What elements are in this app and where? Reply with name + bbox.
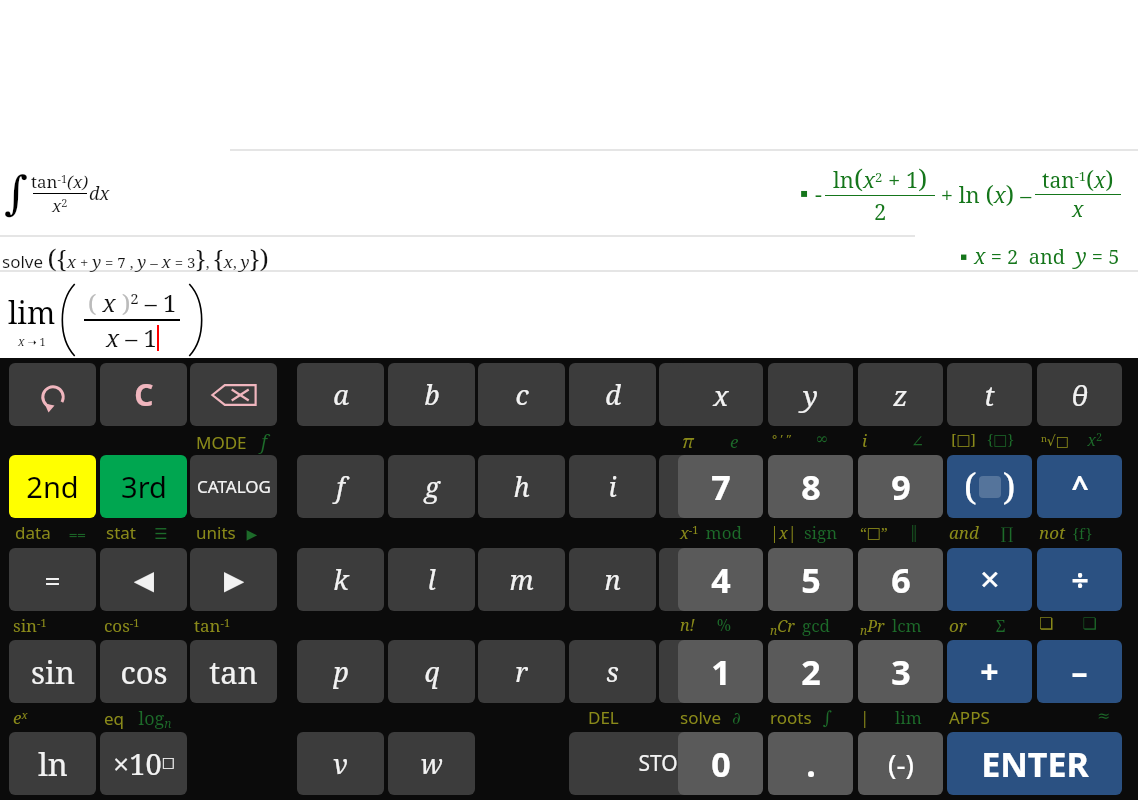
staticText: 8 xyxy=(801,464,821,510)
button[interactable]: 2nd xyxy=(9,455,96,518)
button[interactable]: 5 xyxy=(768,548,853,611)
button[interactable]: e xyxy=(659,363,746,426)
button[interactable]: Plus xyxy=(947,640,1032,703)
button[interactable]: Negative xyxy=(858,732,943,795)
staticText: k xyxy=(333,561,349,598)
button[interactable]: cos xyxy=(100,640,187,703)
staticText: p xyxy=(333,653,349,690)
button[interactable]: Multiply xyxy=(947,548,1032,611)
button[interactable]: ENTER xyxy=(947,732,1122,795)
button[interactable]: i xyxy=(569,455,656,518)
button[interactable]: z xyxy=(858,363,943,426)
button[interactable]: 2 xyxy=(768,640,853,703)
staticText: + xyxy=(980,650,999,694)
button[interactable]: b xyxy=(388,363,475,426)
staticText: l xyxy=(427,561,436,598)
button[interactable]: ln xyxy=(9,732,96,795)
staticText: eq logn xyxy=(104,706,172,732)
button[interactable]: f xyxy=(297,455,384,518)
staticText: b xyxy=(424,376,440,413)
button[interactable]: 3rd xyxy=(100,455,187,518)
staticText: 7 xyxy=(711,464,731,510)
button[interactable]: p xyxy=(297,640,384,703)
button[interactable]: x xyxy=(678,363,763,426)
button[interactable]: Parentheses xyxy=(947,455,1032,518)
staticText: ▶ xyxy=(224,565,244,595)
button[interactable]: θ xyxy=(1037,363,1122,426)
button[interactable]: Power xyxy=(1037,455,1122,518)
button[interactable]: r xyxy=(478,640,565,703)
staticText: x2 xyxy=(52,194,68,217)
button[interactable]: Left xyxy=(100,548,187,611)
button[interactable]: u xyxy=(659,640,746,703)
button[interactable]: 9 xyxy=(858,455,943,518)
button[interactable]: n xyxy=(569,548,656,611)
button[interactable]: 1 xyxy=(678,640,763,703)
button[interactable]: h xyxy=(478,455,565,518)
staticText: + ln (x) – xyxy=(935,177,1032,210)
button[interactable]: m xyxy=(478,548,565,611)
staticText: π e xyxy=(682,429,739,454)
button[interactable]: 0 xyxy=(678,732,763,795)
button[interactable]: g xyxy=(388,455,475,518)
button[interactable]: Delete xyxy=(190,363,277,426)
button[interactable]: tan xyxy=(190,640,277,703)
staticText: STO xyxy=(638,749,678,778)
button[interactable]: ×10□ xyxy=(100,732,187,795)
staticText: not {f} xyxy=(1039,521,1093,544)
staticText: f xyxy=(336,468,345,505)
staticText: solve ({x + y = 7 , y – x = 3}, {x, y}) xyxy=(2,240,269,275)
button[interactable]: k xyxy=(297,548,384,611)
staticText: | lim xyxy=(860,706,922,729)
button[interactable]: STO xyxy=(569,732,747,795)
button[interactable]: t xyxy=(947,363,1032,426)
staticText: [□] {□} xyxy=(951,429,1014,449)
button[interactable]: 6 xyxy=(858,548,943,611)
staticText: ✕ xyxy=(979,565,1001,595)
staticText: x = 2 and y = 5 xyxy=(974,242,1120,271)
staticText: z xyxy=(893,376,908,414)
button[interactable]: d xyxy=(569,363,656,426)
button[interactable]: Undo xyxy=(9,363,96,426)
button[interactable]: o xyxy=(659,548,746,611)
staticText: 3 xyxy=(891,649,911,695)
staticText: solve ∂ xyxy=(680,706,741,729)
staticText: ⁿ√□ x2 xyxy=(1041,429,1103,451)
staticText: ex xyxy=(13,706,28,729)
button[interactable]: = xyxy=(9,548,96,611)
button[interactable]: v xyxy=(297,732,384,795)
button[interactable]: 7 xyxy=(678,455,763,518)
button[interactable]: 8 xyxy=(768,455,853,518)
staticText: ln xyxy=(38,743,68,785)
button[interactable]: Right xyxy=(190,548,277,611)
button[interactable]: Minus xyxy=(1037,640,1122,703)
button[interactable]: 3 xyxy=(858,640,943,703)
staticText: sin xyxy=(31,651,75,693)
button[interactable]: l xyxy=(388,548,475,611)
button[interactable]: j xyxy=(659,455,746,518)
staticText: roots ∫ xyxy=(770,706,832,729)
staticText: 2 xyxy=(801,649,821,695)
staticText: MODE f xyxy=(196,429,268,455)
staticText: 1 xyxy=(711,649,731,695)
button[interactable]: c xyxy=(478,363,565,426)
button[interactable]: CATALOG xyxy=(190,455,277,518)
staticText: i ∠ xyxy=(862,429,925,452)
button[interactable]: sin xyxy=(9,640,96,703)
button[interactable]: a xyxy=(297,363,384,426)
button[interactable]: y xyxy=(768,363,853,426)
button[interactable]: C xyxy=(100,363,187,426)
button[interactable]: 4 xyxy=(678,548,763,611)
staticText: DEL xyxy=(588,706,619,729)
button[interactable]: . xyxy=(768,732,853,795)
staticText: tan-1(x) xyxy=(31,170,89,193)
staticText: t xyxy=(984,376,995,414)
button[interactable]: q xyxy=(388,640,475,703)
staticText: stat ☰ xyxy=(106,521,168,544)
button[interactable]: s xyxy=(569,640,656,703)
button[interactable]: Divide xyxy=(1037,548,1122,611)
staticText: nCr gcd xyxy=(770,614,830,639)
button[interactable]: w xyxy=(388,732,475,795)
